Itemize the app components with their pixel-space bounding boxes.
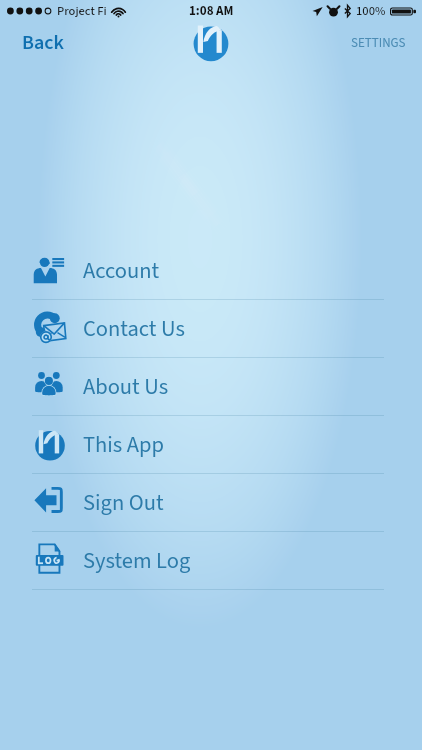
button[interactable]: Contact Us — [0, 300, 422, 358]
staticText: SETTINGS — [351, 34, 406, 53]
staticText: Project Fi — [57, 2, 107, 20]
staticText: System Log — [83, 545, 191, 577]
staticText: 100% — [356, 2, 386, 20]
button[interactable]: About Us — [0, 358, 422, 416]
staticText: Sign Out — [83, 487, 164, 519]
button[interactable]: SETTINGS — [347, 29, 410, 58]
staticText: About Us — [83, 371, 169, 403]
staticText: 1:08 AM — [189, 2, 234, 21]
button[interactable]: System Log — [0, 532, 422, 590]
staticText: Account — [83, 255, 160, 287]
button[interactable]: Sign Out — [0, 474, 422, 532]
staticText: Back — [22, 29, 64, 57]
staticText: This App — [83, 429, 164, 461]
button[interactable]: Back — [16, 24, 70, 62]
button[interactable]: Account — [0, 242, 422, 300]
staticText: Contact Us — [83, 313, 185, 345]
button[interactable]: This App — [0, 416, 422, 474]
button[interactable]: App logo — [191, 23, 231, 63]
